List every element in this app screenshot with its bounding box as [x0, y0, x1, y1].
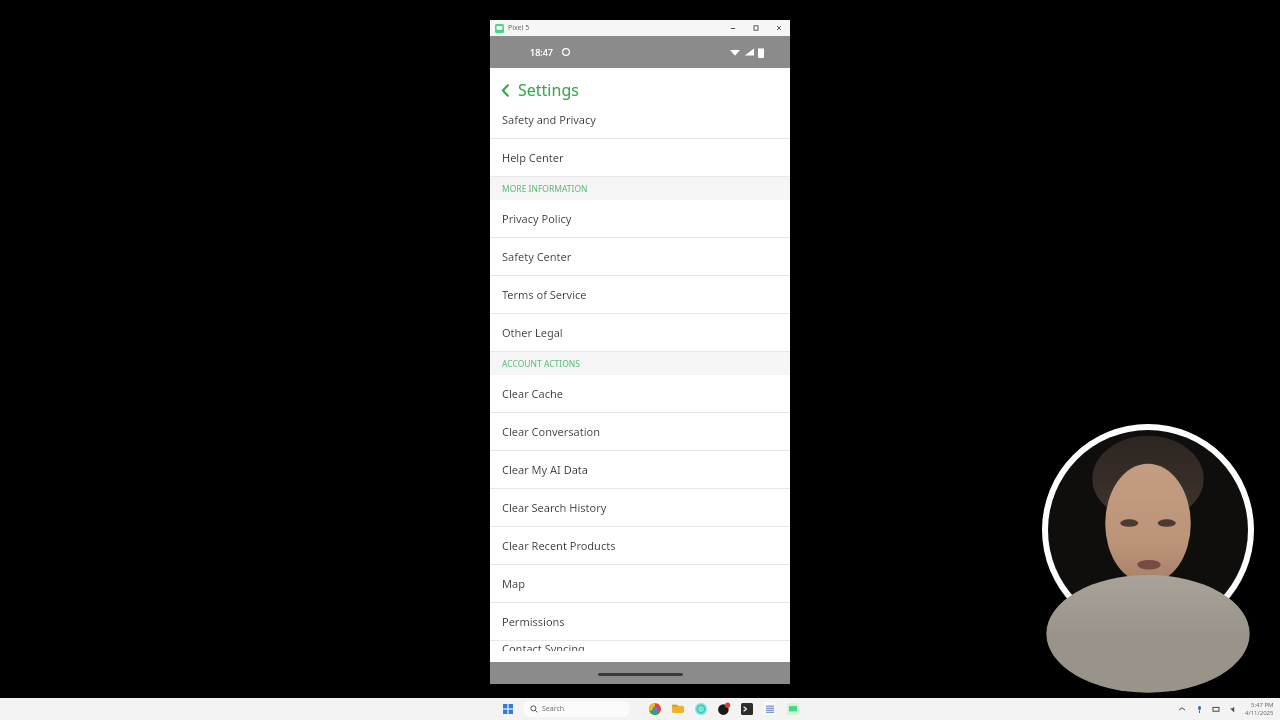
- button[interactable]: Terminal: [739, 701, 755, 717]
- button[interactable]: Safety and Privacy: [490, 101, 790, 139]
- staticText: Terms of Service: [502, 287, 587, 302]
- button[interactable]: Maximize: [744, 20, 767, 36]
- button[interactable]: Notepad: [762, 701, 778, 717]
- button[interactable]: Help Center: [490, 139, 790, 177]
- button[interactable]: Clear Cache: [490, 375, 790, 413]
- staticText: 5:47 PM: [1251, 701, 1274, 709]
- button[interactable]: Privacy Policy: [490, 200, 790, 238]
- button[interactable]: Back: [494, 79, 516, 101]
- button[interactable]: Clear Recent Products: [490, 527, 790, 565]
- button[interactable]: Safety Center: [490, 238, 790, 276]
- staticText: Clear My AI Data: [502, 462, 588, 477]
- button[interactable]: Volume: [1228, 704, 1238, 714]
- staticText: Clear Recent Products: [502, 538, 616, 553]
- button[interactable]: Messenger: [693, 701, 709, 717]
- staticText: Clear Cache: [502, 386, 563, 401]
- staticText: Permissions: [502, 614, 565, 629]
- button[interactable]: Clear Conversation: [490, 413, 790, 451]
- button[interactable]: Chrome: [647, 701, 663, 717]
- button[interactable]: Android Emulator: [785, 701, 801, 717]
- staticText: Privacy Policy: [502, 211, 572, 226]
- staticText: ACCOUNT ACTIONS: [502, 358, 580, 370]
- button[interactable]: 5:47 PM: [1245, 698, 1276, 720]
- staticText: Help Center: [502, 150, 564, 165]
- staticText: Map: [502, 576, 525, 591]
- staticText: Safety and Privacy: [502, 112, 596, 127]
- button[interactable]: Microphone: [1194, 704, 1204, 714]
- button[interactable]: Minimize: [721, 20, 744, 36]
- button[interactable]: Clear Search History: [490, 489, 790, 527]
- staticText: Clear Conversation: [502, 424, 601, 439]
- button[interactable]: File Explorer: [670, 701, 686, 717]
- button[interactable]: Contact Syncing: [490, 641, 790, 651]
- button[interactable]: Start: [500, 701, 516, 717]
- staticText: Settings: [518, 79, 579, 101]
- button[interactable]: Search: [523, 701, 630, 717]
- button[interactable]: Show hidden icons: [1177, 704, 1187, 714]
- staticText: 18:47: [530, 46, 554, 58]
- button[interactable]: Permissions: [490, 603, 790, 641]
- button[interactable]: Close: [767, 20, 790, 36]
- staticText: Contact Syncing: [502, 641, 585, 651]
- button[interactable]: Other Legal: [490, 314, 790, 352]
- button[interactable]: Terms of Service: [490, 276, 790, 314]
- button[interactable]: Media player: [716, 701, 732, 717]
- staticText: MORE INFORMATION: [502, 183, 588, 195]
- button[interactable]: Network: [1211, 704, 1221, 714]
- staticText: Search: [542, 704, 565, 714]
- button[interactable]: Map: [490, 565, 790, 603]
- button[interactable]: Clear My AI Data: [490, 451, 790, 489]
- staticText: Other Legal: [502, 325, 563, 340]
- staticText: Pixel 5: [508, 23, 530, 33]
- staticText: Clear Search History: [502, 500, 607, 515]
- staticText: 4/11/2025: [1245, 709, 1274, 717]
- staticText: Safety Center: [502, 249, 572, 264]
